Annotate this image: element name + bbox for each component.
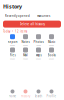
- staticText: Books: [47, 53, 55, 57]
- staticText: Report: [7, 40, 17, 44]
- button[interactable]: Music: [45, 34, 58, 46]
- button[interactable]: Mail: [19, 47, 32, 60]
- staticText: Music: [48, 40, 55, 44]
- staticText: 4d ago: [23, 58, 28, 60]
- staticText: Photos: [33, 40, 43, 44]
- button[interactable]: Notes: [19, 34, 32, 46]
- staticText: Today • 12 items: [3, 30, 27, 33]
- staticText: Maps: [35, 53, 41, 57]
- staticText: Home: [8, 94, 16, 98]
- button[interactable]: Delete all history: [3, 21, 61, 28]
- staticText: Files: [9, 53, 15, 57]
- button[interactable]: Books: [45, 47, 58, 60]
- staticText: 4h ago: [23, 45, 28, 46]
- button[interactable]: Home: [6, 89, 19, 98]
- staticText: Delete all history: [19, 22, 44, 26]
- staticText: 3d ago: [10, 58, 15, 60]
- staticText: 6d ago: [49, 58, 54, 60]
- staticText: Mail: [23, 53, 28, 57]
- staticText: 5d ago: [36, 58, 41, 60]
- staticText: History: [21, 94, 30, 98]
- button[interactable]: Favourites: [35, 13, 52, 19]
- staticText: History: [3, 3, 22, 10]
- staticText: Search: [34, 94, 42, 98]
- staticText: Favourites: [37, 14, 50, 18]
- staticText: 2d ago: [49, 45, 54, 46]
- staticText: Recently opened: [5, 14, 30, 18]
- staticText: Notes: [21, 40, 29, 44]
- staticText: Profile: [46, 94, 56, 98]
- button[interactable]: Search: [32, 89, 45, 98]
- button[interactable]: Photos: [32, 34, 45, 46]
- staticText: 2h ago: [10, 45, 15, 46]
- button[interactable]: Maps: [32, 47, 45, 60]
- staticText: 1d ago: [36, 45, 41, 46]
- button[interactable]: History: [19, 89, 32, 98]
- button[interactable]: Profile: [45, 89, 58, 98]
- button[interactable]: Files: [6, 47, 19, 60]
- button[interactable]: Report: [6, 34, 19, 46]
- button[interactable]: Recently opened: [3, 13, 32, 19]
